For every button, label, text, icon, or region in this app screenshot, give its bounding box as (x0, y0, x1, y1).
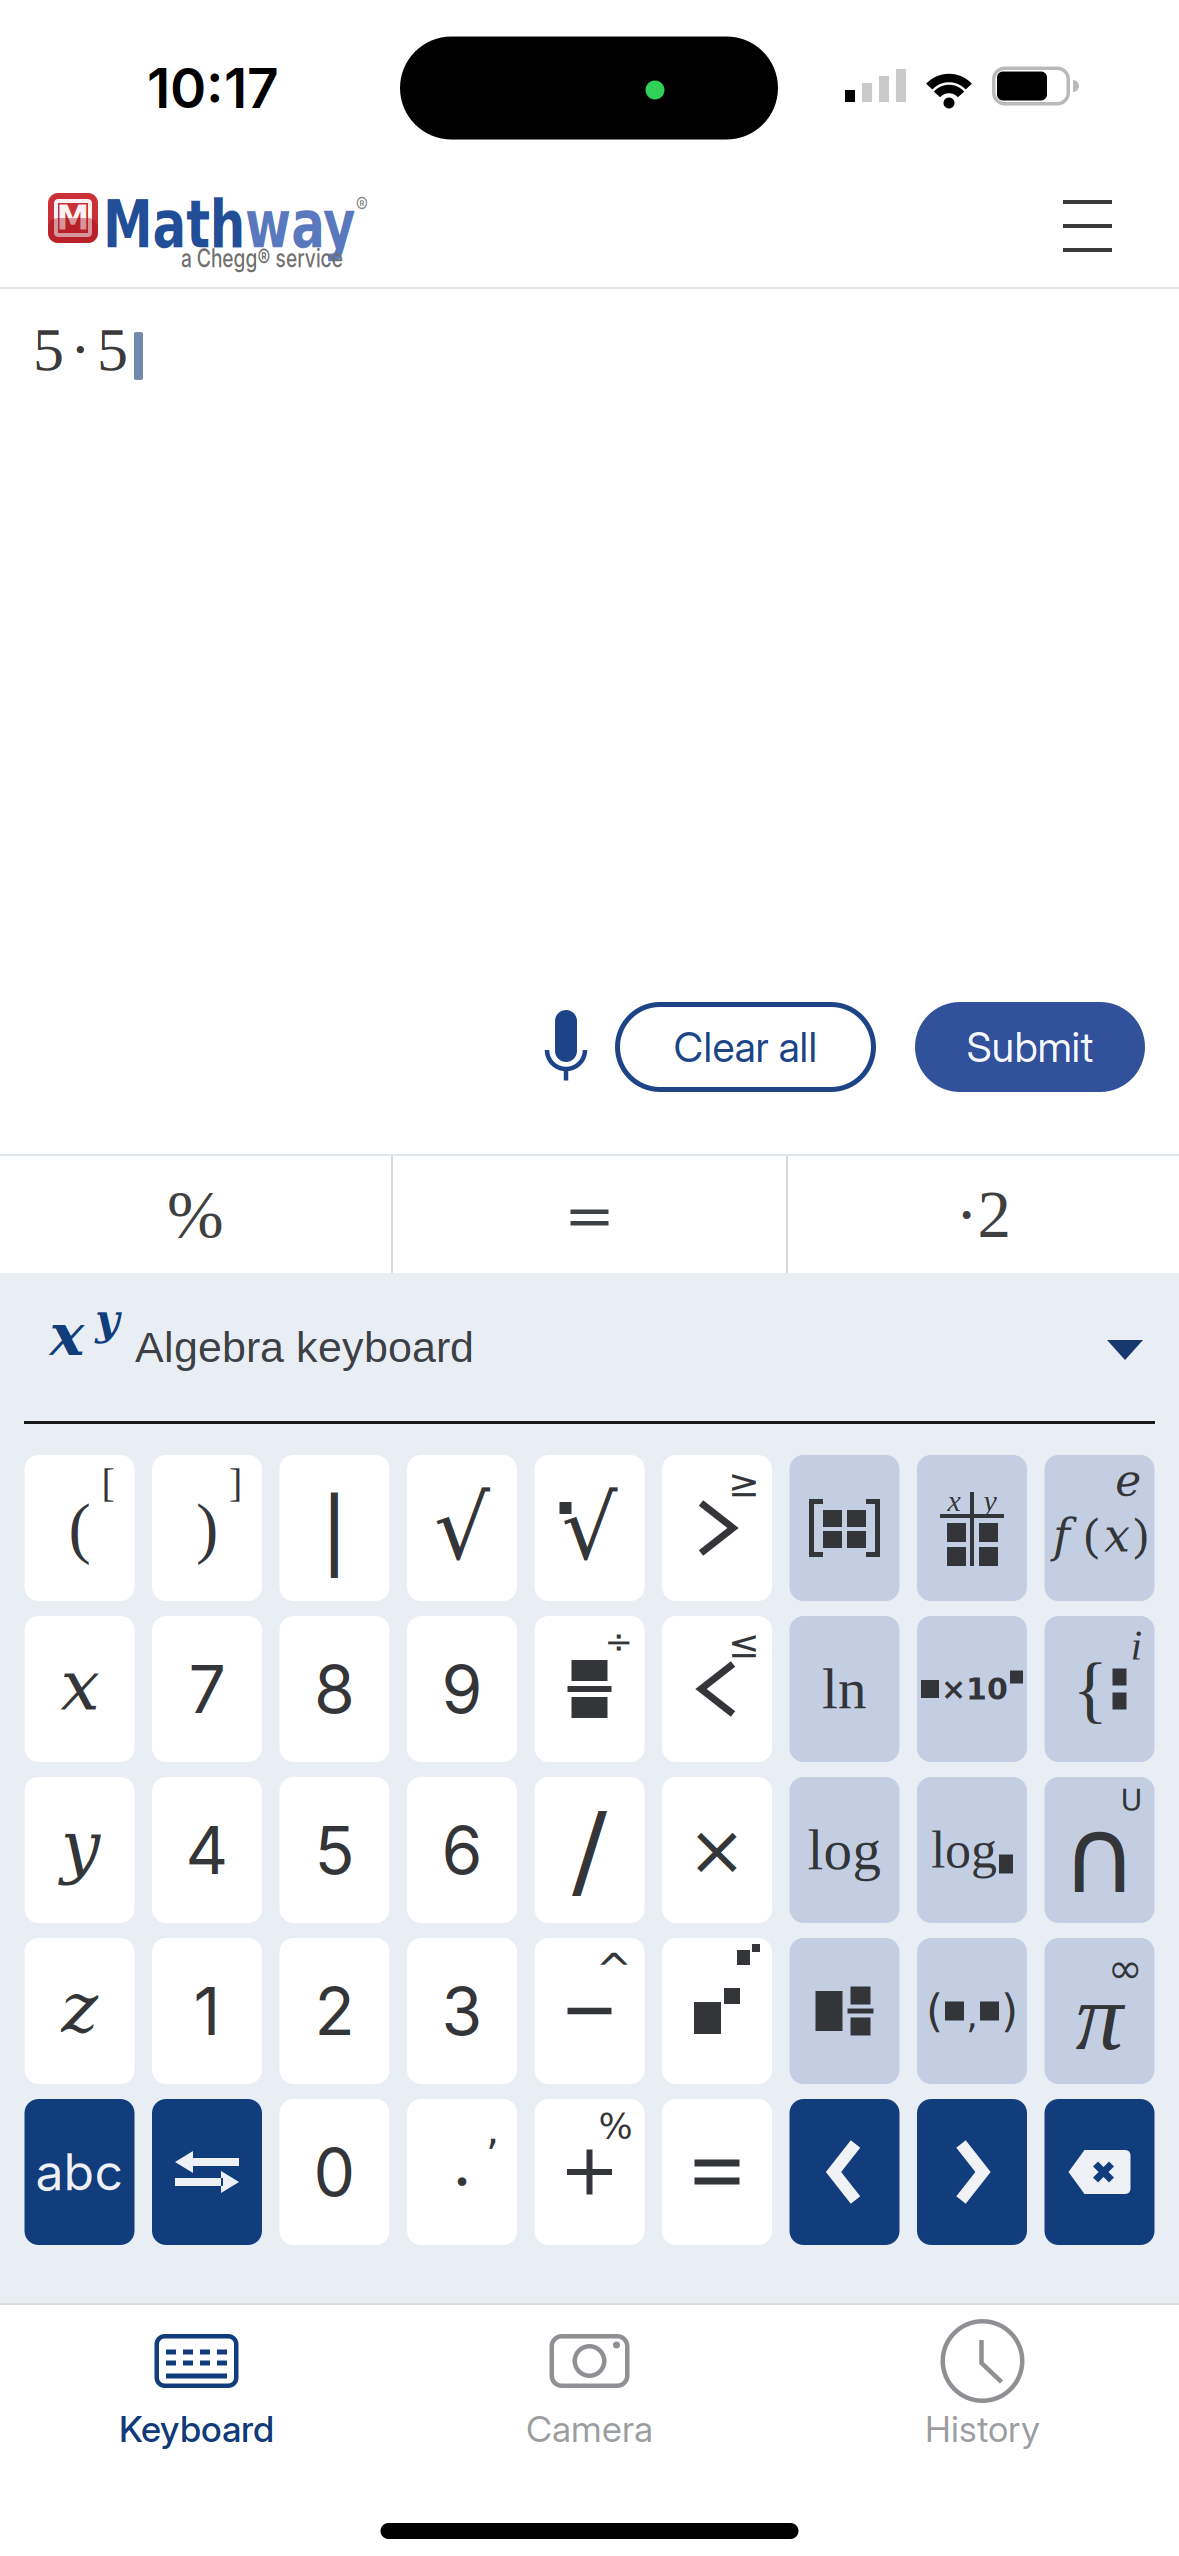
button[interactable] (789, 1455, 899, 1601)
staticText: 10:17 (147, 55, 279, 121)
staticText: ·2 (955, 1177, 1011, 1252)
staticText: 4 (185, 1810, 228, 1890)
button[interactable]: ≥ (662, 1455, 772, 1601)
button[interactable] (0, 162, 49, 214)
button[interactable] (662, 1938, 772, 2084)
staticText: ≤ (728, 1622, 760, 1666)
staticText: √ (434, 1477, 490, 1579)
staticText: 5 (97, 315, 128, 384)
button[interactable]: x (917, 1455, 1027, 1601)
button[interactable]: 3 (407, 1938, 517, 2084)
button[interactable]: % (0, 1156, 391, 1273)
staticText: { (1072, 1648, 1108, 1730)
staticText: ^ (595, 1944, 632, 1995)
button[interactable]: √ (534, 1455, 644, 1601)
button[interactable] (789, 2099, 899, 2245)
button[interactable]: Clear all (615, 1002, 876, 1092)
button[interactable]: ln (789, 1616, 899, 1762)
button[interactable] (152, 2099, 262, 2245)
staticText: 9 (441, 1649, 482, 1729)
staticText: ] (229, 1461, 242, 1505)
staticText: ∩ (1061, 1795, 1137, 1917)
button[interactable]: × (662, 1777, 772, 1923)
staticText: 7 (188, 1649, 225, 1729)
button[interactable]: ≤ (662, 1616, 772, 1762)
staticText: M (56, 199, 89, 237)
staticText: Submit (966, 1022, 1093, 1072)
button[interactable] (789, 1938, 899, 2084)
button[interactable]: 4 (152, 1777, 262, 1923)
button[interactable]: Keyboard (0, 2319, 393, 2451)
button[interactable] (1044, 2099, 1154, 2245)
button[interactable]: 8 (279, 1616, 389, 1762)
button[interactable]: 0 (279, 2099, 389, 2245)
staticText: ∞ (1107, 1944, 1142, 1993)
staticText: log (931, 1821, 997, 1879)
staticText: 𝑓(𝑥) (1046, 1515, 1152, 1561)
button[interactable]: ÷ (534, 1616, 644, 1762)
staticText: x (947, 1484, 960, 1518)
button[interactable] (917, 2099, 1027, 2245)
staticText: ) (1001, 1985, 1018, 2037)
button[interactable] (543, 1009, 589, 1085)
staticText: π (1075, 1964, 1123, 2070)
button[interactable]: ×10 (917, 1616, 1027, 1762)
staticText: 𝑧 (55, 1976, 104, 2046)
staticText: History (925, 2407, 1040, 2451)
staticText: 𝒚 (91, 1301, 125, 1343)
button[interactable]: { (1044, 1616, 1154, 1762)
button[interactable]: ∩ (1044, 1777, 1154, 1923)
button[interactable]: ·2 (788, 1156, 1179, 1273)
button[interactable]: | (279, 1455, 389, 1601)
button[interactable]: % (534, 2099, 644, 2245)
button[interactable]: 𝑓(𝑥) (1044, 1455, 1154, 1601)
staticText: Keyboard (119, 2407, 274, 2451)
button[interactable]: Submit (915, 1002, 1145, 1092)
button[interactable]: / (534, 1777, 644, 1923)
button[interactable]: 6 (407, 1777, 517, 1923)
staticText: | (320, 1478, 349, 1577)
staticText: ( (68, 1491, 90, 1565)
button[interactable]: log (917, 1777, 1027, 1923)
staticText: 2 (314, 1971, 354, 2051)
button[interactable]: 𝑥 (24, 1616, 134, 1762)
staticText: √ (561, 1477, 617, 1579)
button[interactable]: 9 (407, 1616, 517, 1762)
staticText: 5 (33, 315, 64, 384)
button[interactable]: ^ (534, 1938, 644, 2084)
button[interactable]: log (789, 1777, 899, 1923)
button[interactable]: . (407, 2099, 517, 2245)
staticText: U (1120, 1783, 1142, 1818)
button[interactable]: History (786, 2319, 1179, 2451)
staticText: 0 (313, 2132, 355, 2212)
button[interactable]: ( (917, 1938, 1027, 2084)
button[interactable]: Camera (393, 2319, 786, 2451)
staticText: 3 (441, 1971, 482, 2051)
staticText: way (272, 186, 404, 263)
button[interactable]: 𝑦 (24, 1777, 134, 1923)
staticText: / (572, 1789, 607, 1911)
staticText: Algebra keyboard (135, 1323, 474, 1371)
staticText: abc (35, 2142, 123, 2202)
button[interactable]: 2 (279, 1938, 389, 2084)
button[interactable]: 1 (152, 1938, 262, 2084)
button[interactable] (662, 2099, 772, 2245)
staticText: 1 (193, 1971, 220, 2051)
staticText: , (966, 1993, 978, 2037)
button[interactable]: ) (152, 1455, 262, 1601)
staticText: % (167, 1177, 224, 1252)
staticText: Camera (526, 2407, 653, 2451)
button[interactable]: abc (24, 2099, 134, 2245)
staticText: [ (101, 1461, 114, 1505)
button[interactable] (393, 1156, 786, 1273)
staticText: , (486, 2105, 499, 2154)
button[interactable]: √ (407, 1455, 517, 1601)
button[interactable]: 7 (152, 1616, 262, 1762)
button[interactable]: 𝑧 (24, 1938, 134, 2084)
button[interactable]: 5 (279, 1777, 389, 1923)
staticText: a Chegg® service (181, 242, 397, 273)
button[interactable]: 𝒙 (0, 1273, 1179, 1421)
button[interactable]: π (1044, 1938, 1154, 2084)
button[interactable]: ( (24, 1455, 134, 1601)
